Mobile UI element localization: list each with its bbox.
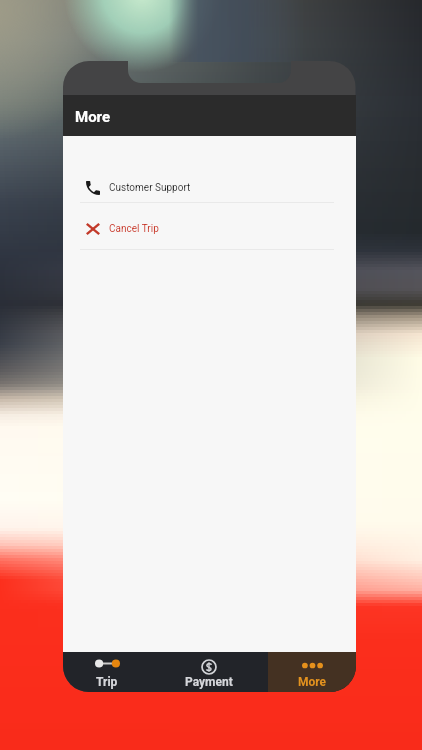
staticText: Customer Support [109, 182, 191, 194]
button[interactable]: More [268, 652, 356, 692]
staticText: More [298, 675, 327, 689]
staticText: Payment [185, 675, 233, 689]
staticText: Cancel Trip [109, 223, 159, 235]
button[interactable]: Customer Support [63, 156, 356, 203]
staticText: More [75, 108, 111, 126]
button[interactable]: Trip [63, 652, 150, 692]
other: Payment [201, 659, 217, 675]
other: More [302, 662, 323, 669]
other: Trip [95, 659, 120, 668]
staticText: Trip [96, 675, 118, 689]
button[interactable]: Cancel Trip [63, 203, 356, 250]
button[interactable]: Payment [150, 652, 268, 692]
